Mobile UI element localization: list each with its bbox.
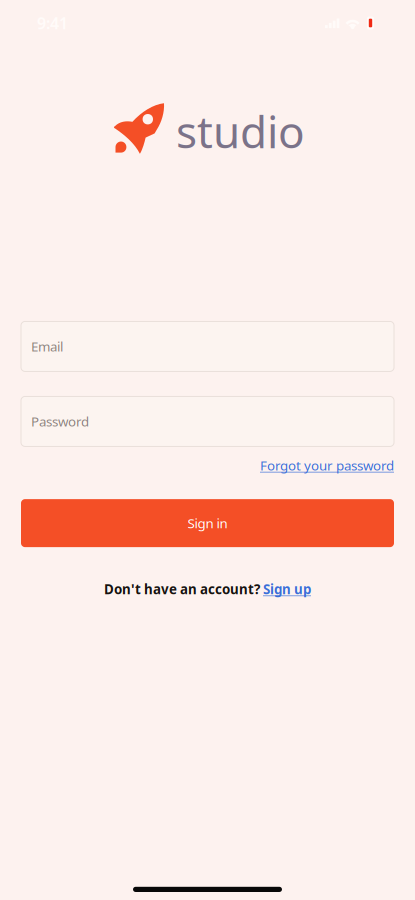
- staticText: Sign up: [263, 580, 311, 598]
- button[interactable]: Forgot your password: [260, 456, 394, 474]
- staticText: studio: [176, 102, 305, 160]
- staticText: Email: [31, 338, 63, 355]
- staticText: Don't have an account?: [104, 580, 260, 598]
- button[interactable]: Sign up: [263, 580, 311, 598]
- staticText: Sign in: [187, 514, 227, 532]
- staticText: Password: [31, 413, 89, 430]
- button[interactable]: Email: [21, 321, 394, 371]
- button[interactable]: Sign in: [21, 499, 394, 547]
- staticText: 9:41: [37, 12, 68, 34]
- staticText: Forgot your password: [260, 456, 394, 474]
- button[interactable]: Password: [21, 396, 394, 446]
